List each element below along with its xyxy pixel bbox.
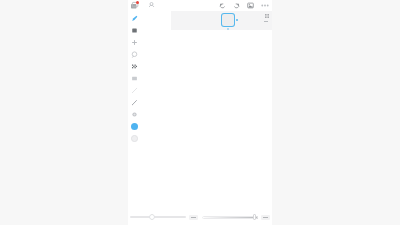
button[interactable]: Lasso select [128, 48, 140, 60]
button[interactable]: Redo [232, 1, 241, 10]
button[interactable]: Value [189, 215, 198, 220]
button[interactable]: Share [147, 1, 156, 10]
button[interactable]: Pencil [128, 96, 140, 108]
button[interactable]: More options [260, 1, 270, 10]
button[interactable]: Value [261, 215, 270, 220]
button[interactable]: Export image [246, 1, 255, 10]
button[interactable]: Pattern [128, 60, 140, 72]
button[interactable]: Opacity [202, 211, 258, 223]
button[interactable]: Color [128, 120, 140, 132]
button[interactable]: Undo [218, 1, 227, 10]
button[interactable]: Eraser [128, 24, 140, 36]
button[interactable]: Brush [128, 12, 140, 24]
button[interactable]: Secondary color [128, 132, 140, 144]
button[interactable]: Selected shape [221, 13, 235, 27]
button[interactable]: Move [128, 36, 140, 48]
button[interactable]: Shape [128, 72, 140, 84]
button[interactable]: Line [128, 84, 140, 96]
button[interactable]: Layers [130, 1, 139, 10]
button[interactable]: Grid [264, 13, 269, 18]
button[interactable]: Brush size [130, 211, 186, 223]
button[interactable]: Smudge [128, 108, 140, 120]
